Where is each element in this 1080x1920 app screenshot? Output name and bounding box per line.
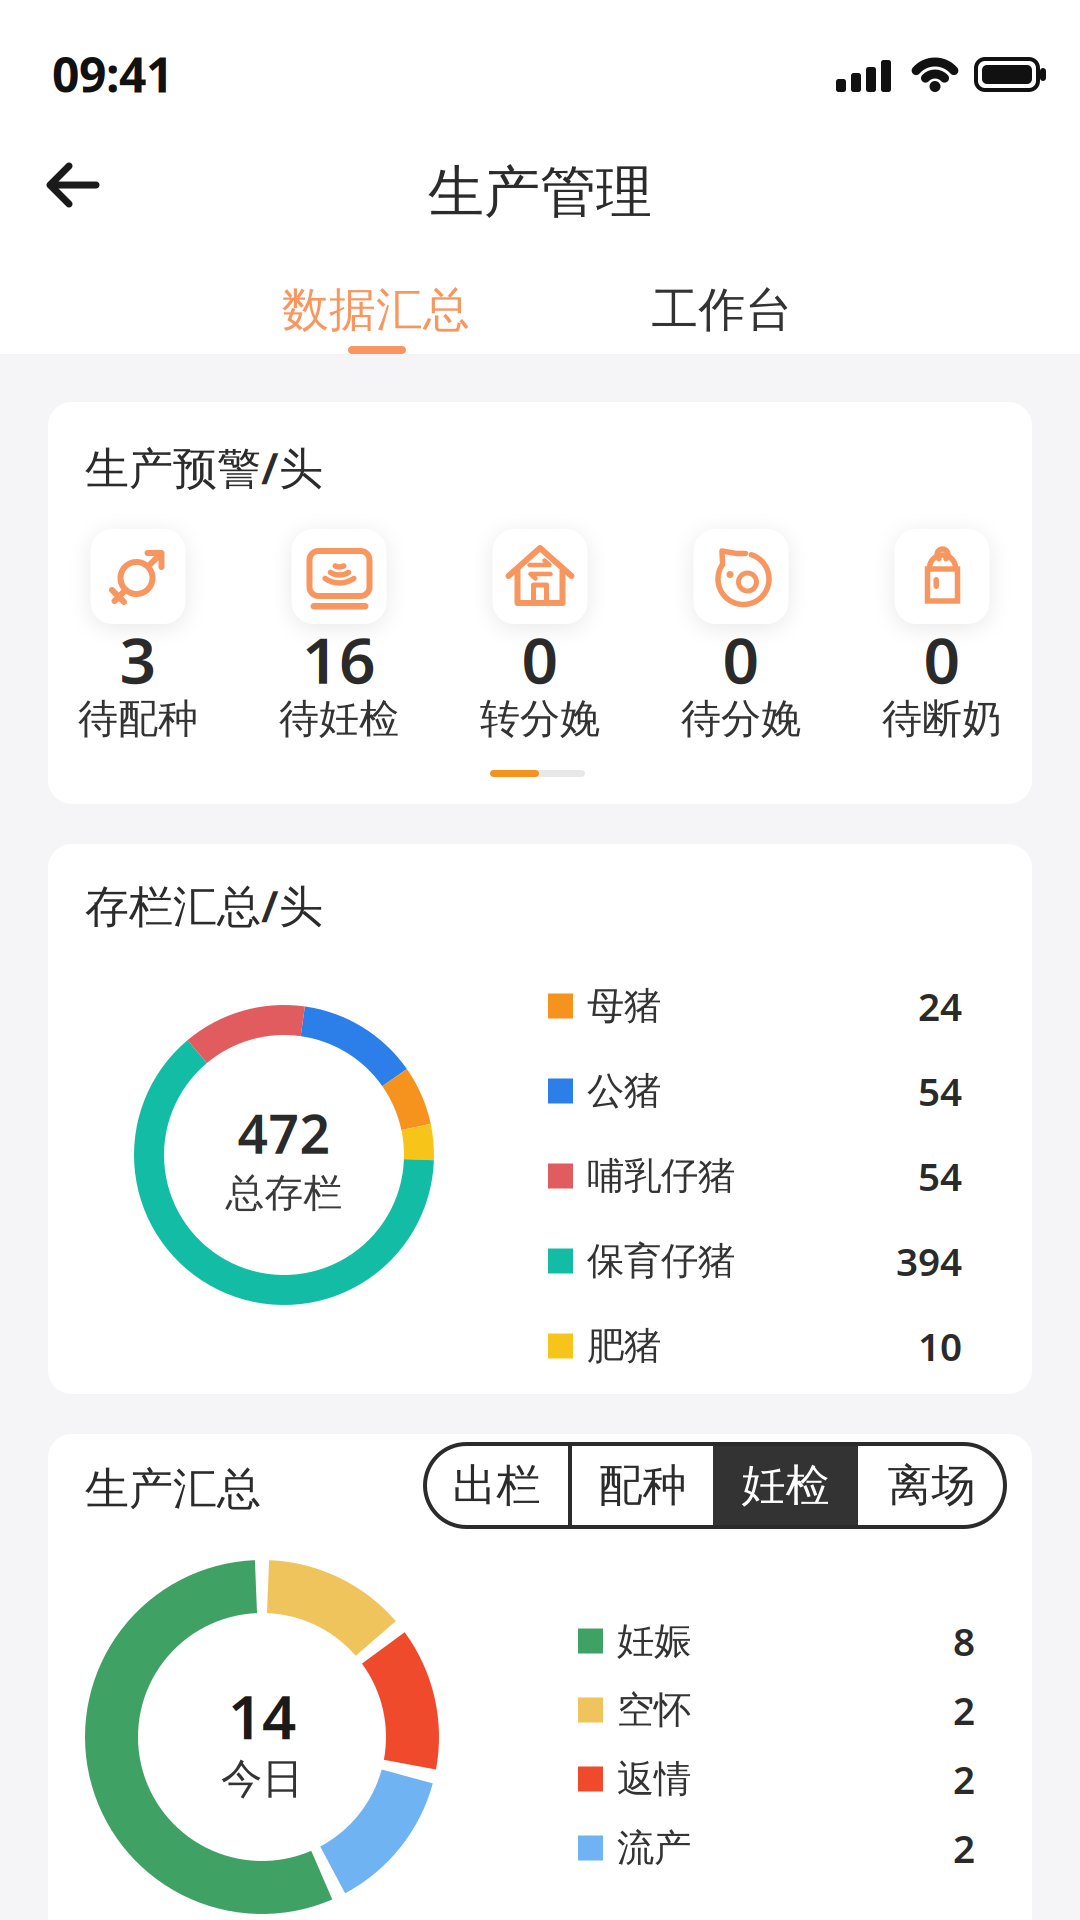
staticText: 09:41 [52,42,173,106]
staticText: 10 [918,1320,962,1372]
staticText: 返情 [617,1756,691,1802]
staticText: 16 [302,616,376,701]
staticText: 存栏汇总/头 [85,876,323,934]
staticText: 出栏 [452,1458,540,1512]
staticText: 待分娩 [681,694,801,743]
staticText: 空怀 [617,1687,691,1733]
staticText: 0 [722,616,759,701]
staticText: 妊娠 [617,1618,691,1664]
staticText: 哺乳仔猪 [587,1153,735,1199]
staticText: 待妊检 [279,694,399,743]
staticText: 转分娩 [480,694,600,743]
staticText: 生产预警/头 [85,438,323,496]
staticText: 离场 [887,1458,975,1512]
button[interactable]: 0 [460,529,620,744]
staticText: 8 [953,1615,975,1667]
button[interactable]: 0 [862,529,1022,744]
staticText: 2 [953,1684,975,1736]
button[interactable]: 16 [259,529,419,744]
staticText: 母猪 [587,983,661,1029]
staticText: 2 [953,1753,975,1805]
staticText: 公猪 [587,1068,661,1114]
button[interactable]: 妊检 [713,1444,858,1527]
button[interactable]: 3 [58,529,218,744]
button[interactable] [0,122,100,210]
staticText: 54 [918,1065,962,1117]
staticText: 54 [918,1150,962,1202]
staticText: 肥猪 [587,1323,661,1369]
button[interactable]: 离场 [858,1444,1005,1527]
staticText: 保育仔猪 [587,1238,735,1284]
staticText: 生产管理 [428,158,652,227]
staticText: 今日 [221,1754,303,1804]
button[interactable]: 配种 [572,1444,713,1527]
button[interactable]: 出栏 [425,1444,568,1527]
staticText: 3 [119,616,156,701]
staticText: 472 [237,1098,330,1168]
staticText: 配种 [598,1458,686,1512]
staticText: 工作台 [651,281,792,339]
staticText: 生产汇总 [85,1462,261,1516]
staticText: 394 [896,1235,962,1287]
staticText: 流产 [617,1825,691,1871]
button[interactable]: 工作台 [0,250,895,345]
button[interactable]: 0 [661,529,821,744]
staticText: 待配种 [78,694,198,743]
staticText: 总存栏 [225,1169,342,1217]
staticText: 14 [228,1676,296,1756]
staticText: 待断奶 [882,694,1002,743]
staticText: 妊检 [741,1458,829,1512]
staticText: 0 [923,616,960,701]
staticText: 数据汇总 [282,281,470,339]
staticText: 0 [521,616,558,701]
staticText: 2 [953,1822,975,1874]
staticText: 24 [918,980,962,1032]
button[interactable]: 数据汇总 [0,250,549,345]
